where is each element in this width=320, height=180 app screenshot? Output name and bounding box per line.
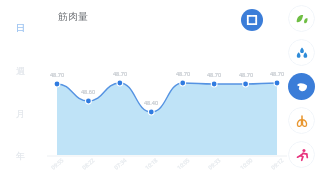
staticText: 週 [16, 65, 25, 76]
button[interactable]: 年 [8, 146, 32, 164]
staticText: 48.70 [264, 70, 290, 77]
staticText: 日 [16, 22, 25, 33]
staticText: 48.70 [44, 71, 70, 78]
staticText: 10:18 [139, 152, 163, 175]
staticText: 48.70 [233, 71, 259, 78]
staticText: 09:55 [45, 152, 69, 175]
staticText: 年 [16, 150, 25, 161]
button[interactable]: Activity [288, 141, 315, 168]
staticText: 09:33 [202, 152, 226, 175]
button[interactable]: Body water [288, 39, 315, 66]
staticText: 07:34 [108, 152, 132, 175]
staticText: 48.40 [138, 99, 164, 106]
staticText: 10:05 [171, 152, 195, 175]
staticText: 48.70 [201, 71, 227, 78]
staticText: 09:12 [265, 152, 289, 175]
staticText: 10:00 [234, 152, 258, 175]
button[interactable]: Fullscreen [241, 9, 263, 31]
button[interactable]: 週 [8, 61, 32, 79]
button[interactable]: 日 [8, 18, 32, 36]
button[interactable]: Muscle mass [288, 73, 315, 100]
staticText: 08:22 [76, 152, 100, 175]
staticText: 48.60 [75, 88, 101, 95]
staticText: 筋肉量 [58, 10, 88, 23]
button[interactable]: 月 [8, 104, 32, 122]
staticText: 月 [16, 108, 25, 119]
staticText: 48.70 [107, 70, 133, 77]
button[interactable]: Body fat [288, 5, 315, 32]
button[interactable]: Lung capacity [288, 107, 315, 134]
staticText: 48.70 [170, 70, 196, 77]
